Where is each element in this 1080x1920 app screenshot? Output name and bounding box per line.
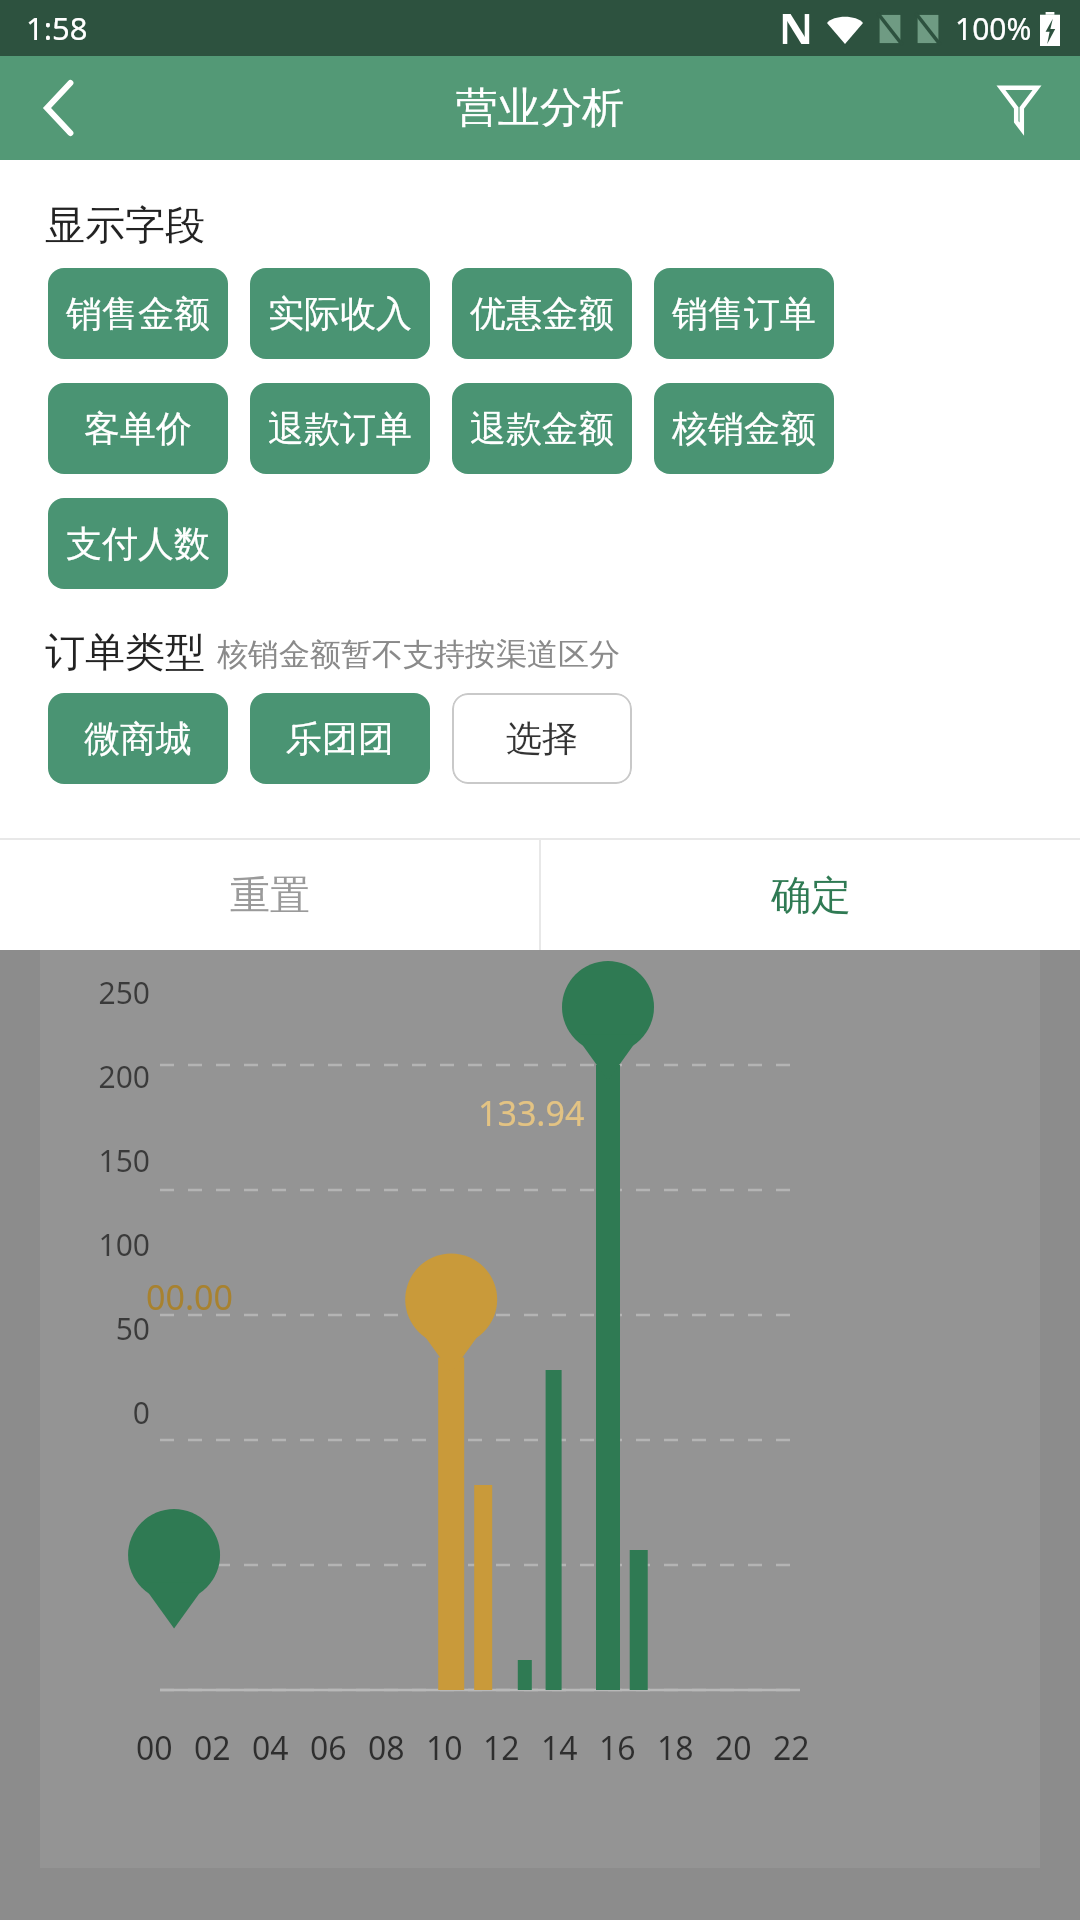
staticText: 06 [310, 1726, 347, 1770]
button[interactable]: 退款金额 [452, 383, 632, 474]
button[interactable]: 确定 [541, 840, 1080, 950]
button[interactable]: Filter [978, 67, 1060, 149]
staticText: 选择 [506, 716, 578, 761]
staticText: 00 [136, 1726, 173, 1770]
staticText: 150 [78, 1140, 150, 1181]
staticText: 退款订单 [268, 406, 412, 451]
button[interactable]: 客单价 [48, 383, 228, 474]
staticText: 客单价 [84, 406, 192, 451]
button[interactable]: 选择 [452, 693, 632, 784]
staticText: 支付人数 [66, 521, 210, 566]
staticText: 04 [252, 1726, 289, 1770]
staticText: 250 [78, 972, 150, 1013]
button[interactable]: 销售金额 [48, 268, 228, 359]
button[interactable]: 乐团团 [250, 693, 430, 784]
staticText: 02 [194, 1726, 231, 1770]
staticText: 133.94 [478, 1090, 585, 1136]
staticText: 微商城 [84, 716, 192, 761]
button[interactable]: 优惠金额 [452, 268, 632, 359]
staticText: 订单类型 [45, 627, 205, 677]
staticText: 营业分析 [456, 82, 624, 135]
staticText: 22 [773, 1726, 810, 1770]
staticText: 退款金额 [470, 406, 614, 451]
staticText: 100% [955, 8, 1032, 49]
button[interactable]: 重置 [0, 840, 539, 950]
staticText: 200 [78, 1056, 150, 1097]
staticText: 核销金额暂不支持按渠道区分 [217, 635, 620, 674]
staticText: 0 [78, 1392, 150, 1433]
staticText: 16 [599, 1726, 636, 1770]
staticText: 优惠金额 [470, 291, 614, 336]
staticText: 确定 [771, 870, 851, 920]
staticText: 10 [426, 1726, 463, 1770]
button[interactable]: 销售订单 [654, 268, 834, 359]
staticText: 14 [541, 1726, 578, 1770]
staticText: 销售订单 [672, 291, 816, 336]
button[interactable]: 微商城 [48, 693, 228, 784]
staticText: 1:58 [26, 7, 88, 49]
staticText: 重置 [230, 870, 310, 920]
button[interactable]: 支付人数 [48, 498, 228, 589]
staticText: 12 [483, 1726, 520, 1770]
staticText: 显示字段 [45, 200, 205, 250]
staticText: 100 [78, 1224, 150, 1265]
staticText: 乐团团 [286, 716, 394, 761]
button[interactable]: 核销金额 [654, 383, 834, 474]
staticText: 18 [657, 1726, 694, 1770]
staticText: 实际收入 [268, 291, 412, 336]
staticText: 销售金额 [66, 291, 210, 336]
staticText: 50 [78, 1308, 150, 1349]
button[interactable]: 退款订单 [250, 383, 430, 474]
staticText: 核销金额 [672, 406, 816, 451]
staticText: 00.00 [146, 1274, 233, 1320]
button[interactable]: 实际收入 [250, 268, 430, 359]
button[interactable]: Back [18, 67, 100, 149]
staticText: 20 [715, 1726, 752, 1770]
staticText: 08 [368, 1726, 405, 1770]
